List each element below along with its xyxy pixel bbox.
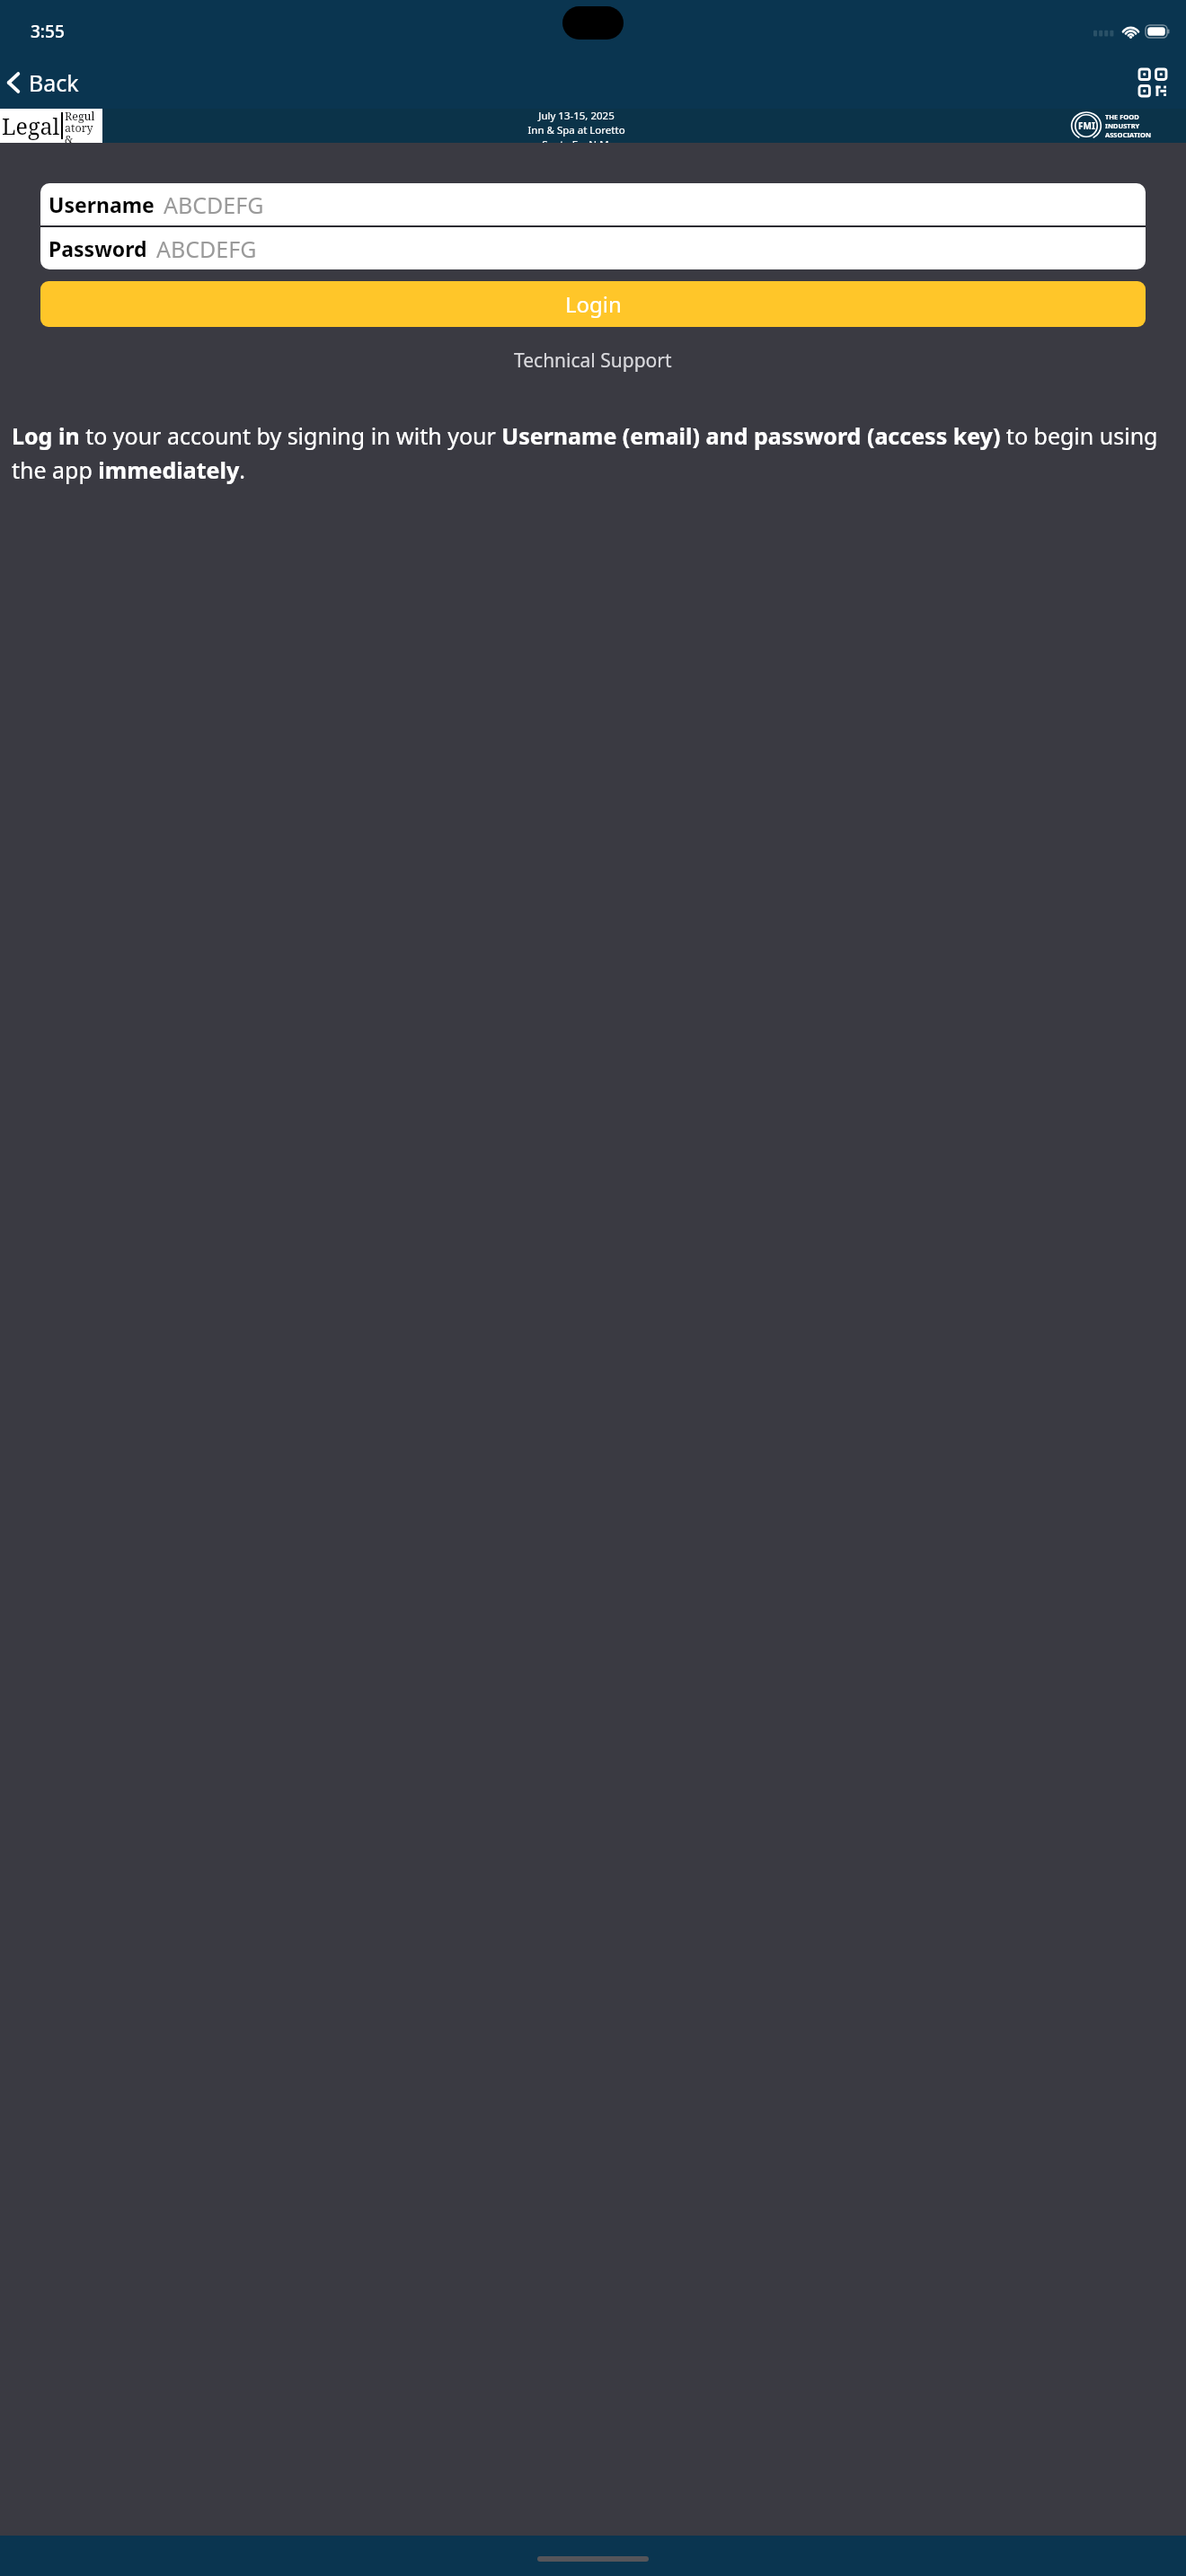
button[interactable]: Username [40, 183, 1146, 225]
button[interactable]: Technical Support [500, 342, 686, 379]
staticText: Back [29, 67, 79, 98]
staticText: ASSOCIATION [1105, 130, 1152, 139]
button[interactable]: Scan QR code [1128, 58, 1177, 107]
staticText: Inn & Spa at Loretto [527, 123, 625, 137]
staticText: Santa Fe, N.M. [542, 137, 612, 143]
staticText: Password [49, 234, 147, 262]
staticText: 3:55 [31, 20, 65, 43]
staticText: ABCDEFG [156, 234, 257, 264]
staticText: July 13-15, 2025 [538, 109, 615, 123]
staticText: INDUSTRY [1105, 121, 1140, 130]
staticText: THE FOOD [1105, 112, 1139, 121]
staticText: Login [565, 289, 622, 319]
staticText: Legal [2, 110, 60, 141]
staticText: Regulatory& [65, 109, 101, 143]
staticText: ABCDEFG [164, 190, 264, 220]
button[interactable]: Password [40, 227, 1146, 269]
staticText: Log in to your account by signing in wit… [12, 420, 1174, 486]
staticText: Username [49, 190, 155, 218]
staticText: FMI [1078, 119, 1095, 132]
staticText: Technical Support [514, 348, 672, 374]
button[interactable]: Back [0, 62, 90, 103]
button[interactable]: Login [40, 281, 1146, 327]
